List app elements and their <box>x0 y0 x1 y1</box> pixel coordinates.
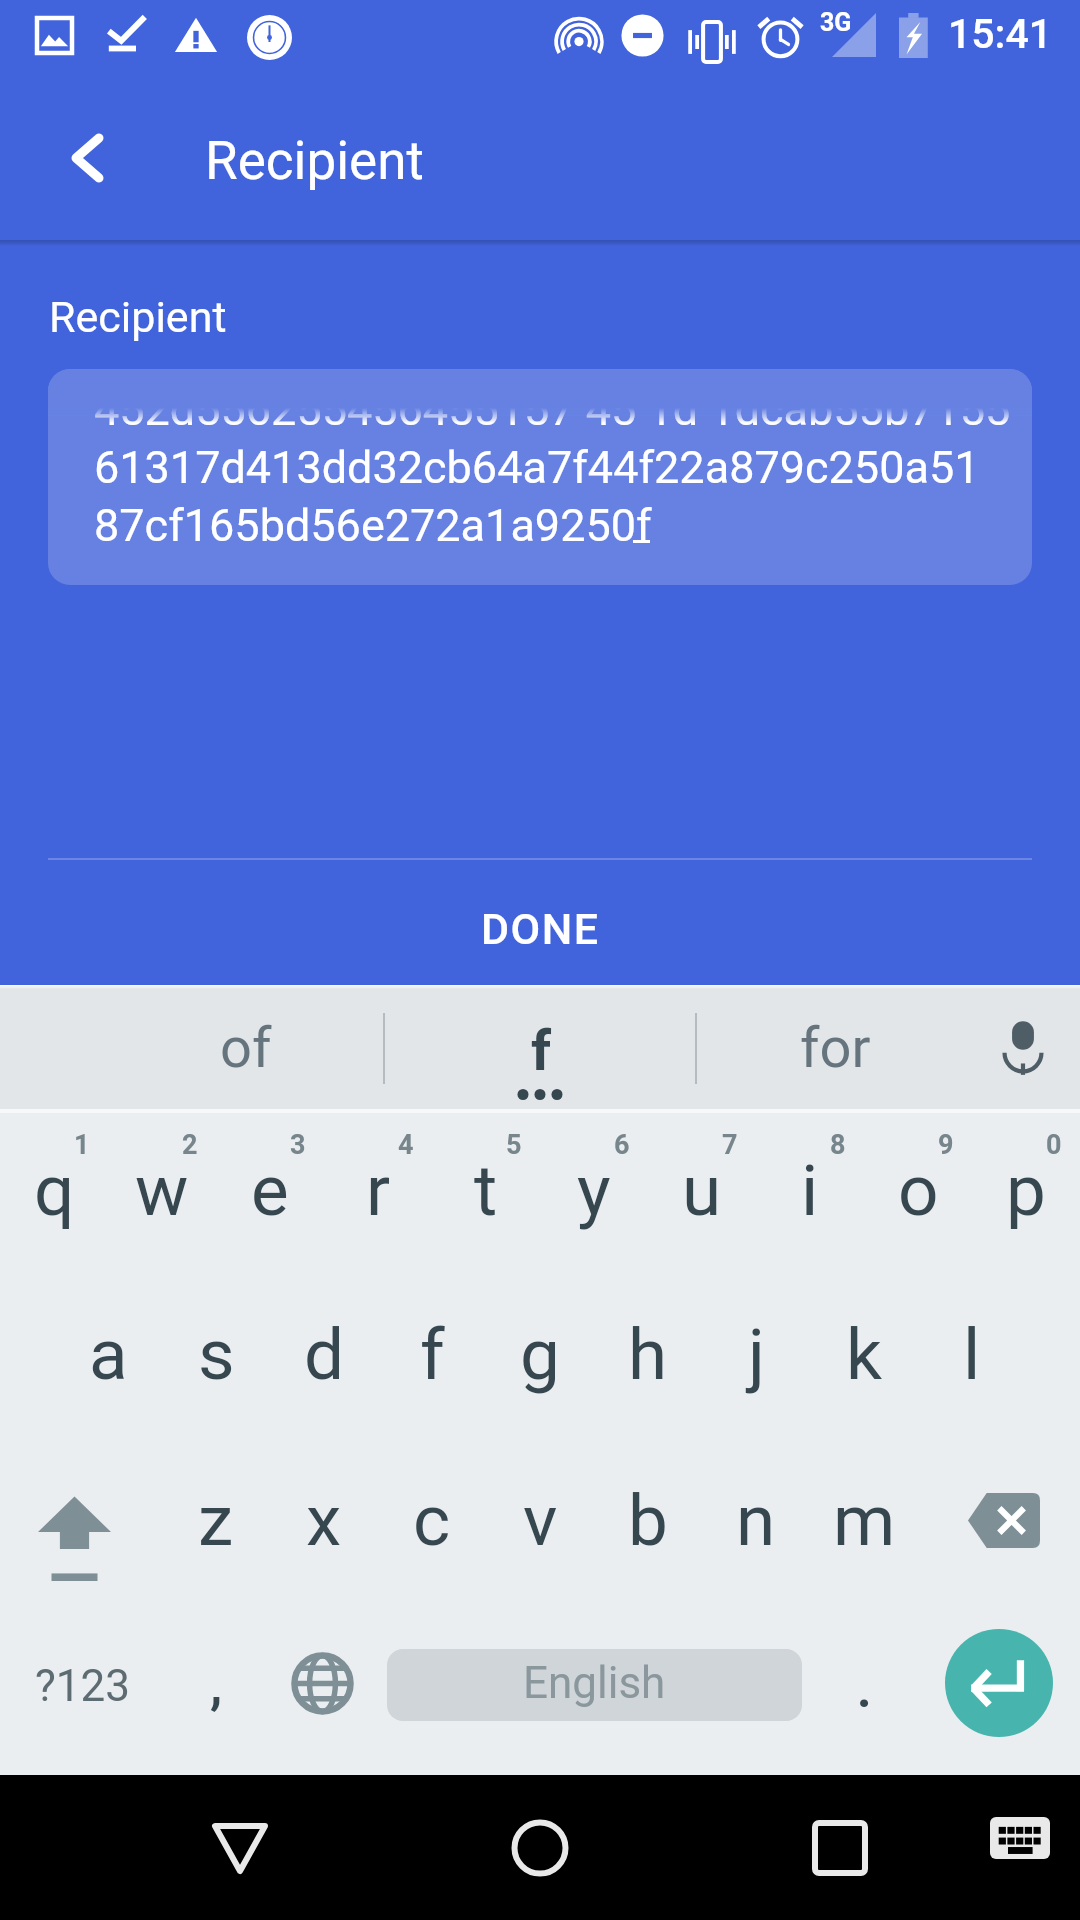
staticText: 5 <box>506 1129 522 1161</box>
button[interactable]: Shift <box>0 1445 162 1611</box>
button[interactable]: English <box>387 1649 802 1721</box>
staticText: n <box>736 1479 776 1562</box>
staticText: Recipient <box>49 292 227 342</box>
staticText: Recipient <box>205 130 424 192</box>
staticText: of <box>220 1015 272 1081</box>
button[interactable]: Change language <box>276 1611 382 1779</box>
button[interactable]: x <box>270 1440 378 1606</box>
staticText: r <box>366 1149 391 1232</box>
button[interactable]: of <box>108 985 383 1109</box>
button[interactable]: d <box>270 1274 378 1440</box>
staticText: l <box>963 1313 981 1396</box>
button[interactable]: 7 <box>648 1113 756 1279</box>
staticText: a <box>89 1313 128 1396</box>
button[interactable]: 8 <box>756 1113 864 1279</box>
staticText: g <box>520 1313 560 1396</box>
staticText: f <box>420 1313 445 1396</box>
button[interactable]: Back <box>200 1813 280 1875</box>
button[interactable]: k <box>810 1274 918 1440</box>
staticText: m <box>833 1479 896 1562</box>
button[interactable]: ?123 <box>0 1611 190 1779</box>
button[interactable]: Recents <box>805 1813 875 1883</box>
staticText: 1 <box>74 1129 90 1161</box>
staticText: y <box>577 1149 611 1232</box>
button[interactable]: 452d556255456455157 45 1d 1dcab55b7155 <box>48 369 1032 585</box>
button[interactable]: Voice input <box>973 985 1080 1109</box>
staticText: k <box>846 1313 882 1396</box>
staticText: 7 <box>722 1129 738 1161</box>
staticText: 15:41 <box>948 10 1053 58</box>
staticText: for <box>800 1015 871 1081</box>
button[interactable]: f <box>378 1274 486 1440</box>
staticText: 452d556255456455157 45 1d 1dcab55b7155 <box>94 383 1011 436</box>
staticText: p <box>1006 1149 1046 1232</box>
staticText: w <box>135 1149 189 1232</box>
button[interactable]: . <box>802 1611 912 1779</box>
button[interactable]: DONE <box>0 873 1080 985</box>
staticText: i <box>801 1149 819 1232</box>
button[interactable]: s <box>162 1274 270 1440</box>
button[interactable]: 3 <box>216 1113 324 1279</box>
staticText: e <box>251 1149 289 1232</box>
button[interactable]: 6 <box>540 1113 648 1279</box>
staticText: 8 <box>830 1129 846 1161</box>
button[interactable]: Delete <box>918 1445 1080 1611</box>
staticText: , <box>210 1657 223 1716</box>
staticText: u <box>682 1149 722 1232</box>
staticText: 6 <box>614 1129 630 1161</box>
staticText: d <box>304 1313 345 1396</box>
button[interactable]: a <box>54 1274 162 1440</box>
staticText: ?123 <box>35 1660 130 1712</box>
button[interactable]: 2 <box>108 1113 216 1279</box>
button[interactable]: 1 <box>0 1113 108 1279</box>
staticText: 9 <box>938 1129 954 1161</box>
staticText: 3G <box>820 8 852 37</box>
staticText: x <box>306 1479 342 1562</box>
staticText: 87cf165bd56e272a1a9250f <box>94 499 652 552</box>
button[interactable]: g <box>486 1274 594 1440</box>
staticText: . <box>857 1661 872 1720</box>
button[interactable]: Navigate up <box>40 118 126 204</box>
button[interactable]: l <box>918 1274 1026 1440</box>
staticText: c <box>413 1479 451 1562</box>
button[interactable]: 9 <box>864 1113 972 1279</box>
button[interactable]: , <box>190 1611 276 1779</box>
button[interactable]: j <box>702 1274 810 1440</box>
staticText: t <box>474 1149 498 1232</box>
staticText: b <box>628 1479 668 1562</box>
button[interactable]: for <box>697 985 973 1109</box>
button[interactable]: z <box>162 1440 270 1606</box>
button[interactable]: Home <box>505 1813 575 1883</box>
staticText: q <box>34 1149 75 1232</box>
staticText: s <box>198 1313 235 1396</box>
staticText: f <box>531 1018 552 1084</box>
staticText: 2 <box>182 1129 198 1161</box>
button[interactable]: 4 <box>324 1113 432 1279</box>
staticText: DONE <box>481 904 600 954</box>
button[interactable]: m <box>810 1440 918 1606</box>
button[interactable]: h <box>594 1274 702 1440</box>
button[interactable]: Switch keyboard <box>990 1817 1050 1859</box>
staticText: English <box>523 1657 666 1709</box>
staticText: 3 <box>290 1129 306 1161</box>
button[interactable]: f <box>385 985 695 1109</box>
button[interactable]: n <box>702 1440 810 1606</box>
staticText: 61317d413dd32cb64a7f44f22a879c250a51 <box>94 441 980 494</box>
staticText: o <box>898 1149 939 1232</box>
staticText: 0 <box>1046 1129 1062 1161</box>
staticText: j <box>748 1313 765 1396</box>
button[interactable]: c <box>378 1440 486 1606</box>
button[interactable]: Enter <box>912 1611 1080 1779</box>
button[interactable]: v <box>486 1440 594 1606</box>
button[interactable]: b <box>594 1440 702 1606</box>
staticText: v <box>523 1479 558 1562</box>
button[interactable]: 0 <box>972 1113 1080 1279</box>
staticText: h <box>628 1313 668 1396</box>
staticText: z <box>198 1479 234 1562</box>
button[interactable]: 5 <box>432 1113 540 1279</box>
staticText: 4 <box>398 1129 414 1161</box>
